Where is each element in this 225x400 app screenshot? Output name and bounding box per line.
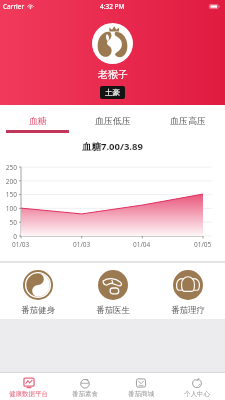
button[interactable]: User avatar bbox=[92, 23, 133, 64]
staticText: 01/05 bbox=[194, 240, 212, 249]
staticText: 01/04 bbox=[133, 240, 151, 249]
button[interactable]: 番茄素食 bbox=[57, 373, 113, 398]
staticText: 01/03 bbox=[12, 240, 30, 249]
button[interactable]: 健康数据平台 bbox=[0, 373, 57, 398]
button[interactable]: 血压低压 bbox=[75, 105, 150, 133]
staticText: 250 bbox=[5, 163, 17, 172]
staticText: 血糖7.00/3.89 bbox=[82, 140, 143, 153]
staticText: 健康数据平台 bbox=[9, 390, 48, 398]
staticText: 番茄素食 bbox=[72, 390, 98, 398]
staticText: 番茄理疗 bbox=[171, 305, 205, 316]
staticText: 100 bbox=[5, 204, 17, 213]
button[interactable]: 番茄理疗 bbox=[150, 263, 225, 316]
staticText: 50 bbox=[9, 218, 17, 227]
button[interactable]: 土豪 bbox=[100, 86, 125, 99]
staticText: 0 bbox=[13, 232, 17, 241]
staticText: 200 bbox=[5, 177, 17, 186]
staticText: 01/03 bbox=[73, 240, 91, 249]
staticText: 4:32 PM bbox=[100, 2, 125, 11]
staticText: 血压低压 bbox=[95, 115, 131, 126]
staticText: 番茄医生 bbox=[96, 305, 130, 316]
staticText: 150 bbox=[5, 190, 17, 199]
staticText: 番茄健身 bbox=[21, 305, 55, 316]
button[interactable]: 番茄健身 bbox=[0, 263, 75, 316]
staticText: 老猴子 bbox=[98, 68, 128, 81]
button[interactable]: 个人中心 bbox=[169, 373, 225, 398]
staticText: 个人中心 bbox=[184, 390, 210, 398]
button[interactable]: 番茄商城 bbox=[113, 373, 169, 398]
staticText: 番茄商城 bbox=[128, 390, 154, 398]
button[interactable]: 血糖 bbox=[0, 105, 75, 133]
staticText: 血压高压 bbox=[170, 115, 206, 126]
staticText: 血糖 bbox=[29, 115, 47, 126]
staticText: Carrier bbox=[3, 2, 25, 11]
button[interactable]: 血压高压 bbox=[150, 105, 225, 133]
staticText: 土豪 bbox=[105, 88, 120, 97]
button[interactable]: 番茄医生 bbox=[75, 263, 150, 316]
